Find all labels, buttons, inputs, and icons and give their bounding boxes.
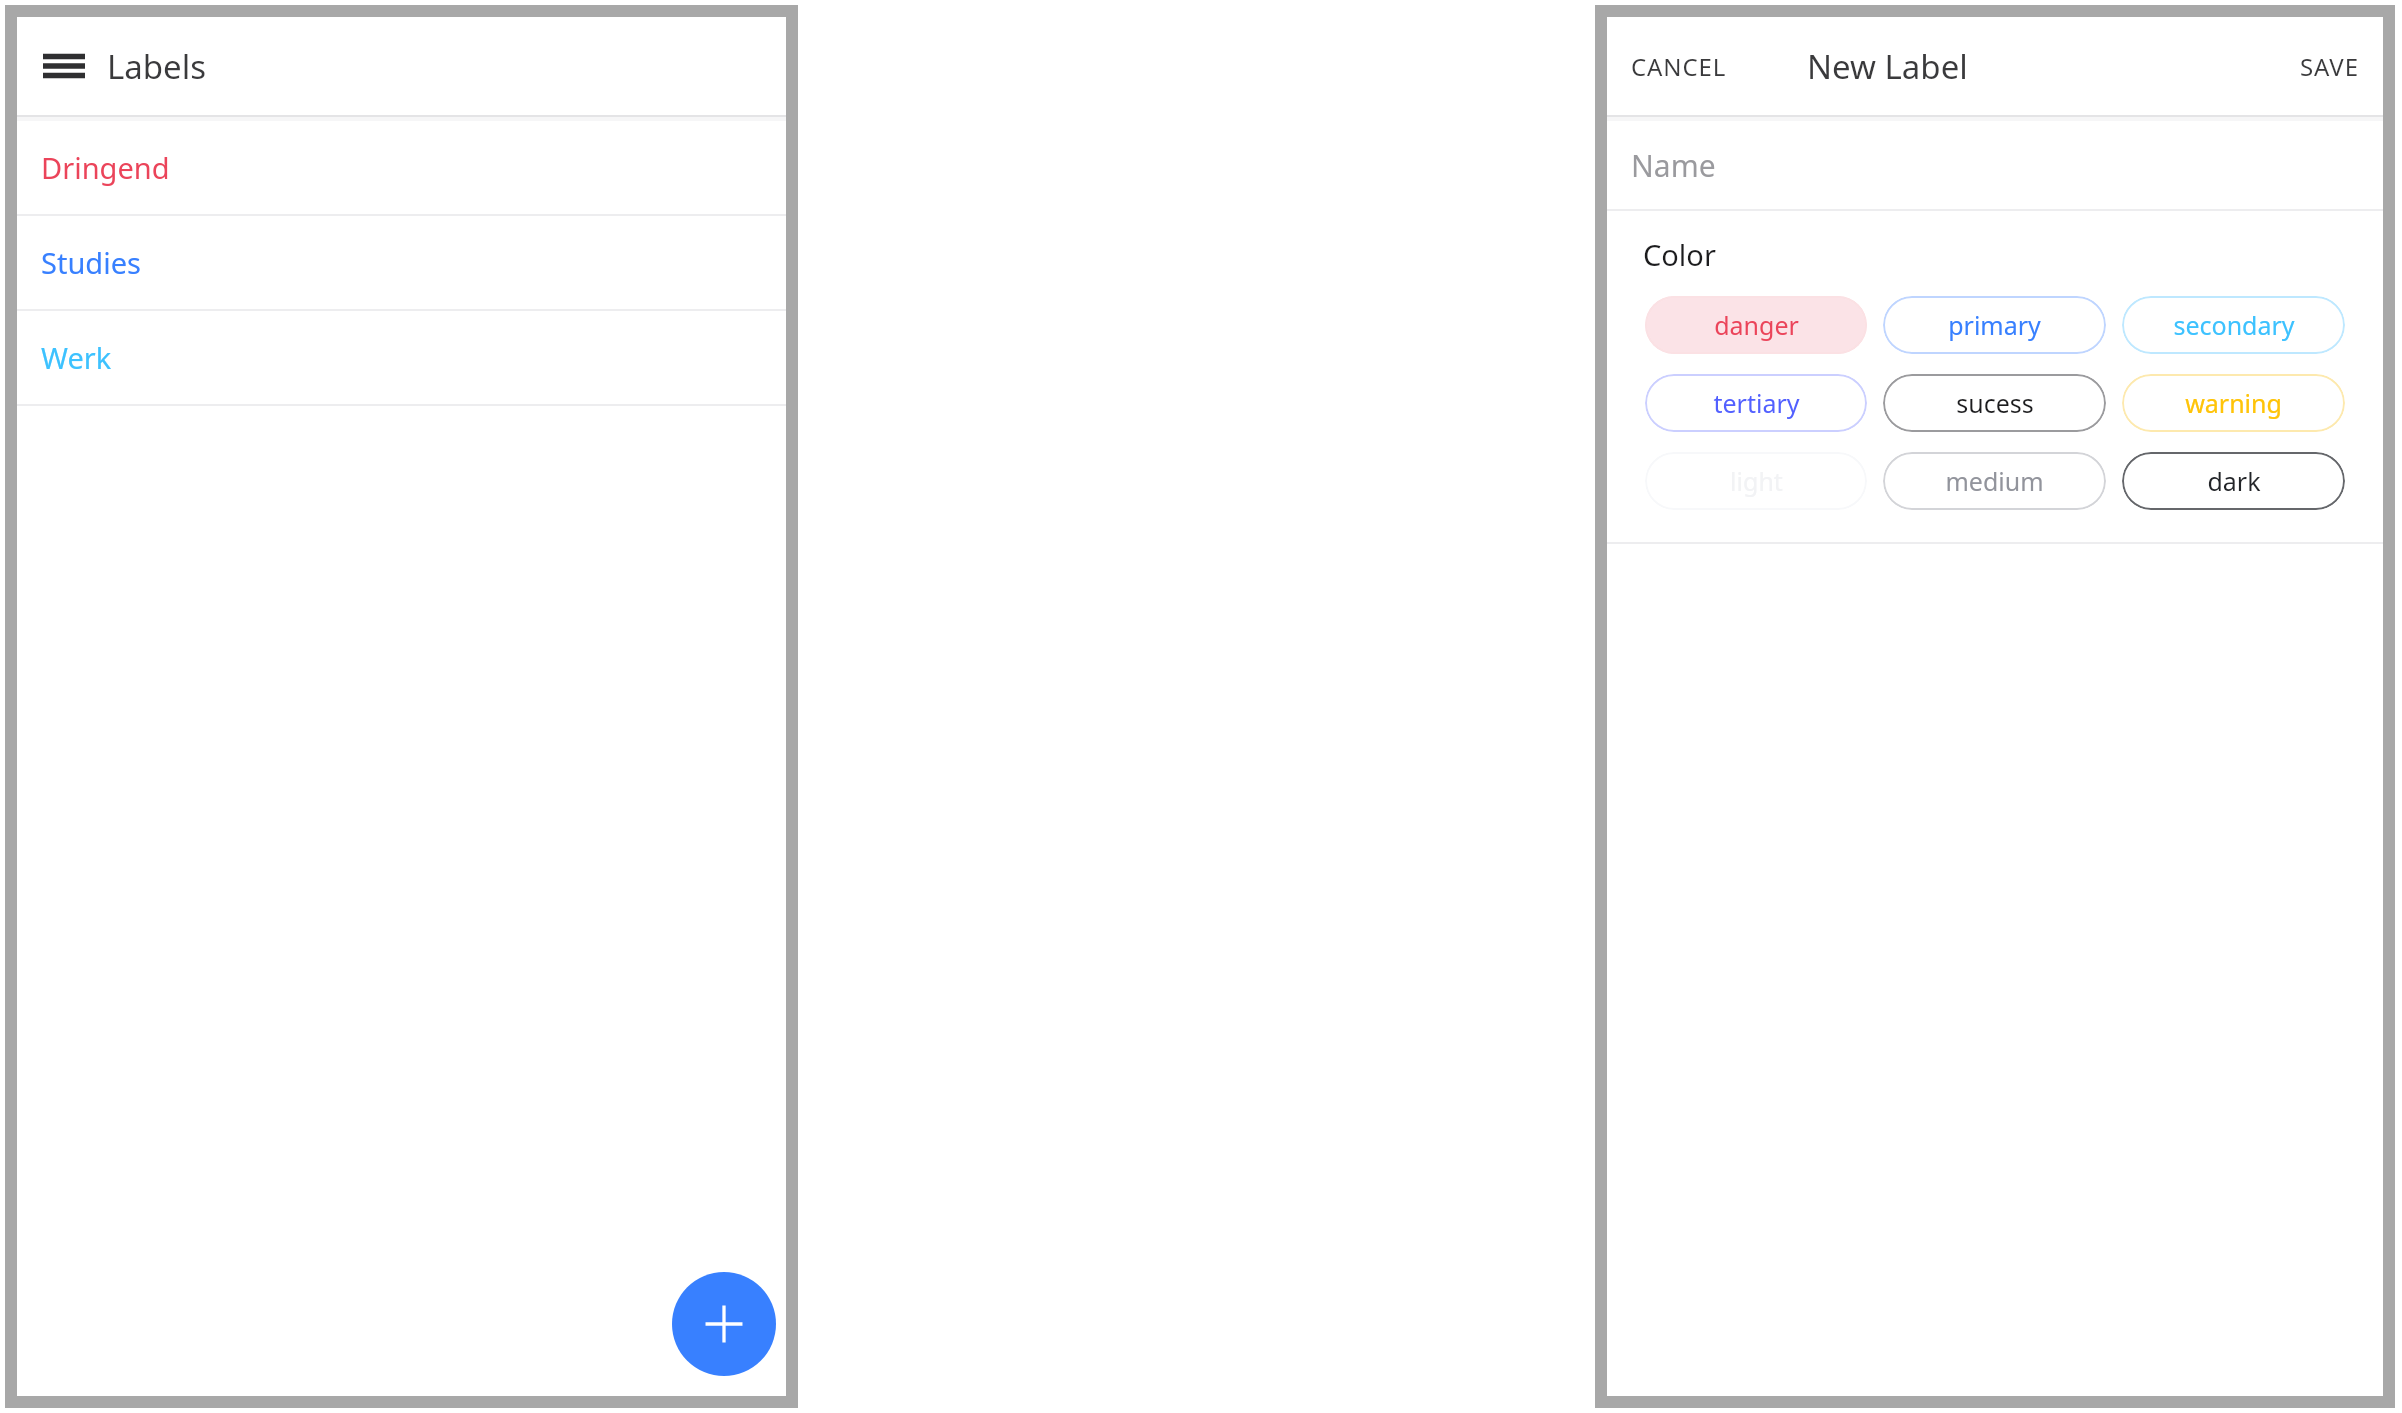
staticText: CANCEL xyxy=(1631,50,1727,83)
button[interactable]: CANCEL xyxy=(1625,42,1733,91)
button[interactable]: Name xyxy=(1607,121,2383,209)
staticText: Labels xyxy=(107,44,207,89)
button[interactable]: secondary xyxy=(2122,296,2345,354)
staticText: Dringend xyxy=(41,148,170,187)
staticText: Studies xyxy=(41,243,141,282)
button[interactable]: warning xyxy=(2122,374,2345,432)
staticText: sucess xyxy=(1956,386,2034,420)
button[interactable]: Open navigation menu xyxy=(37,39,91,93)
staticText: warning xyxy=(2185,386,2282,420)
staticText: secondary xyxy=(2173,308,2295,342)
staticText: Name xyxy=(1631,145,1716,186)
button[interactable]: primary xyxy=(1883,296,2106,354)
staticText: primary xyxy=(1948,308,2041,342)
button[interactable]: danger xyxy=(1645,296,1867,354)
staticText: New Label xyxy=(1807,44,1968,89)
staticText: light xyxy=(1730,464,1783,498)
button[interactable]: Werk xyxy=(17,311,786,404)
button[interactable]: dark xyxy=(2122,452,2345,510)
button[interactable]: Studies xyxy=(17,216,786,309)
staticText: SAVE xyxy=(2300,50,2359,83)
staticText: medium xyxy=(1945,464,2044,498)
button[interactable]: Add label xyxy=(672,1272,776,1376)
button[interactable]: medium xyxy=(1883,452,2106,510)
button[interactable]: Dringend xyxy=(17,121,786,214)
button[interactable]: tertiary xyxy=(1645,374,1867,432)
button[interactable]: SAVE xyxy=(2294,42,2365,91)
staticText: danger xyxy=(1714,308,1799,342)
staticText: tertiary xyxy=(1713,386,1800,420)
staticText: Werk xyxy=(41,338,112,377)
button[interactable]: sucess xyxy=(1883,374,2106,432)
staticText: Color xyxy=(1643,235,1716,274)
staticText: dark xyxy=(2207,464,2261,498)
